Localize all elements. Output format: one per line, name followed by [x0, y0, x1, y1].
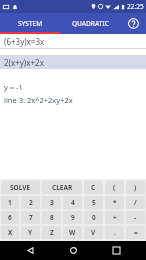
button[interactable]: (: [105, 181, 124, 194]
button[interactable]: 7: [21, 211, 40, 224]
button[interactable]: 8: [42, 211, 61, 224]
button[interactable]: 6: [1, 211, 19, 224]
staticText: V: [91, 228, 96, 237]
button[interactable]: Z: [42, 226, 61, 239]
button[interactable]: Y: [21, 226, 40, 239]
button[interactable]: 5: [84, 196, 103, 209]
button[interactable]: -: [126, 211, 145, 224]
staticText: ): [134, 183, 137, 192]
staticText: 9: [71, 213, 75, 222]
button[interactable]: CLEAR: [42, 181, 82, 194]
staticText: 1: [8, 198, 12, 207]
button[interactable]: 2(x+y)x+2x: [0, 55, 146, 69]
staticText: y = -1: [4, 82, 23, 92]
staticText: 6: [8, 213, 12, 222]
staticText: 2(x+y)x+2x: [4, 57, 44, 68]
staticText: QUADRATIC: [72, 19, 109, 28]
button[interactable]: Recents: [103, 241, 129, 260]
staticText: /: [134, 198, 137, 207]
staticText: 2: [29, 198, 33, 207]
staticText: +: [113, 213, 117, 222]
button[interactable]: QUADRATIC: [60, 13, 120, 34]
button[interactable]: 9: [63, 211, 82, 224]
staticText: (6+3y)x=3x: [4, 36, 45, 47]
staticText: -: [134, 213, 137, 222]
staticText: CLEAR: [52, 183, 73, 192]
staticText: *: [113, 198, 117, 207]
staticText: 8: [50, 213, 54, 222]
staticText: (: [113, 183, 116, 192]
button[interactable]: Back: [17, 241, 43, 260]
button[interactable]: C: [84, 181, 103, 194]
button[interactable]: Help: [120, 13, 146, 34]
button[interactable]: *: [105, 196, 124, 209]
button[interactable]: SYSTEM: [0, 13, 60, 34]
button[interactable]: (6+3y)x=3x: [0, 34, 146, 48]
button[interactable]: +: [105, 211, 124, 224]
staticText: 3: [50, 198, 54, 207]
staticText: X: [8, 228, 13, 237]
staticText: SOLVE: [10, 183, 31, 192]
button[interactable]: 3: [42, 196, 61, 209]
staticText: Y: [28, 228, 33, 237]
staticText: line 3: 2x^2+2xy+2x: [4, 95, 73, 105]
staticText: .: [114, 228, 116, 237]
button[interactable]: 2: [21, 196, 40, 209]
staticText: W: [69, 228, 76, 237]
button[interactable]: SOLVE: [1, 181, 40, 194]
staticText: =: [134, 228, 138, 237]
staticText: 22:25: [127, 2, 144, 11]
staticText: 4: [71, 198, 75, 207]
button[interactable]: /: [126, 196, 145, 209]
staticText: SYSTEM: [18, 19, 43, 28]
button[interactable]: Home: [60, 241, 86, 260]
button[interactable]: ): [126, 181, 145, 194]
button[interactable]: X: [1, 226, 19, 239]
button[interactable]: W: [63, 226, 82, 239]
button[interactable]: V: [84, 226, 103, 239]
button[interactable]: =: [126, 226, 145, 239]
staticText: 7: [29, 213, 33, 222]
staticText: Z: [50, 228, 54, 237]
button[interactable]: 4: [63, 196, 82, 209]
staticText: C: [91, 183, 96, 192]
button[interactable]: 1: [1, 196, 19, 209]
button[interactable]: 0: [84, 211, 103, 224]
staticText: 5: [92, 198, 96, 207]
button[interactable]: .: [105, 226, 124, 239]
staticText: 0: [92, 213, 96, 222]
